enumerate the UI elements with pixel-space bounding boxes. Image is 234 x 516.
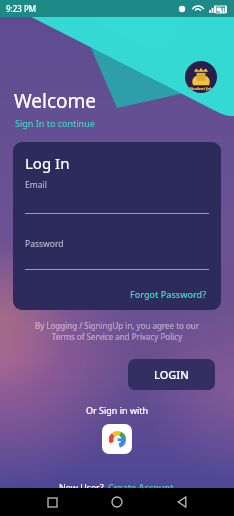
staticText: By Logging / SigningUp in, you agree to … (14, 320, 220, 342)
button[interactable]: Forgot Password? (128, 286, 209, 302)
button[interactable]: Back (169, 489, 195, 515)
staticText: LOGIN (154, 367, 189, 382)
button[interactable]: LOGIN (128, 359, 215, 390)
button[interactable]: Home (104, 489, 130, 515)
staticText: Log In (25, 153, 70, 173)
button[interactable]: Student Job logo (185, 61, 217, 93)
staticText: Welcome (14, 88, 97, 114)
staticText: Create Account (108, 481, 174, 493)
staticText: Student Job (189, 86, 213, 91)
staticText: Or Sign in with (0, 404, 234, 416)
staticText: Forgot Password? (130, 288, 207, 300)
button[interactable]: Sign in with Google (102, 424, 132, 454)
staticText: Password (25, 238, 64, 250)
staticText: New User? (59, 481, 107, 493)
button[interactable]: Recent apps (39, 489, 65, 515)
button[interactable]: Create Account (107, 480, 175, 494)
staticText: Email (25, 179, 47, 191)
staticText: 9:23 PM (6, 3, 37, 14)
staticText: Sign In to continue (15, 117, 95, 129)
